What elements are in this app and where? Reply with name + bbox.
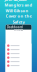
staticText: Join 40,000+ Manglers and [4,0,32,7]
staticText: Safety [12,19,24,25]
staticText: Recent activity [14,30,23,31]
staticText: Will Gibson Cover on the [5,8,31,19]
staticText: Dashboard [7,25,23,29]
